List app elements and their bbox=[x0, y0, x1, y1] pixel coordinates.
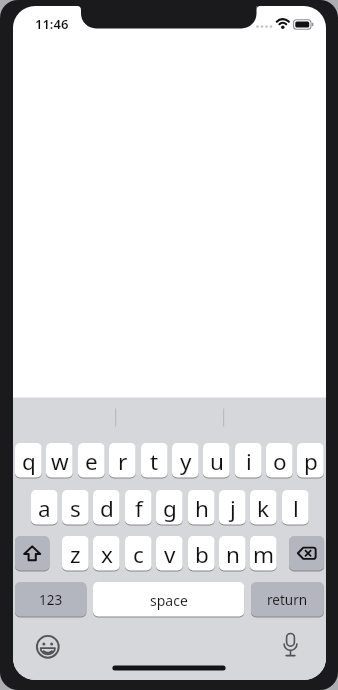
button[interactable]: space bbox=[93, 582, 244, 618]
button[interactable] bbox=[289, 536, 324, 572]
staticText: 11:46 bbox=[35, 15, 69, 32]
staticText: s bbox=[70, 493, 81, 524]
button[interactable]: m bbox=[250, 536, 277, 572]
staticText: e bbox=[85, 446, 98, 477]
button[interactable]: z bbox=[62, 536, 89, 572]
staticText: d bbox=[100, 493, 114, 524]
staticText: h bbox=[195, 493, 209, 524]
button[interactable]: g bbox=[156, 490, 183, 526]
staticText: k bbox=[257, 493, 270, 524]
staticText: w bbox=[51, 446, 69, 477]
staticText: c bbox=[133, 539, 144, 570]
button[interactable]: w bbox=[46, 443, 73, 479]
button[interactable]: 11:46 bbox=[30, 15, 74, 32]
button[interactable]: v bbox=[156, 536, 183, 572]
staticText: v bbox=[164, 539, 176, 570]
staticText: p bbox=[304, 446, 318, 477]
button[interactable]: a bbox=[31, 490, 58, 526]
staticText: f bbox=[135, 493, 143, 524]
button[interactable]: o bbox=[266, 443, 293, 479]
staticText: b bbox=[195, 539, 209, 570]
button[interactable]: l bbox=[282, 490, 309, 526]
staticText: l bbox=[293, 493, 299, 524]
staticText: t bbox=[150, 446, 159, 477]
staticText: u bbox=[210, 446, 224, 477]
staticText: q bbox=[22, 446, 36, 477]
staticText: g bbox=[163, 493, 177, 524]
staticText: a bbox=[38, 493, 51, 524]
button[interactable]: u bbox=[203, 443, 230, 479]
staticText: x bbox=[101, 539, 113, 570]
button[interactable]: c bbox=[125, 536, 152, 572]
button[interactable]: s bbox=[62, 490, 89, 526]
button[interactable]: p bbox=[297, 443, 324, 479]
staticText: m bbox=[253, 539, 275, 570]
button[interactable]: q bbox=[15, 443, 42, 479]
staticText: i bbox=[246, 446, 252, 477]
button[interactable]: 123 bbox=[15, 582, 86, 618]
staticText: return bbox=[267, 591, 308, 609]
button[interactable]: e bbox=[78, 443, 105, 479]
button[interactable]: j bbox=[219, 490, 246, 526]
staticText: space bbox=[150, 591, 188, 610]
staticText: o bbox=[273, 446, 287, 477]
button[interactable] bbox=[15, 536, 49, 572]
button[interactable]: x bbox=[93, 536, 120, 572]
button[interactable]: n bbox=[219, 536, 246, 572]
staticText: n bbox=[226, 539, 240, 570]
button[interactable]: d bbox=[93, 490, 120, 526]
button[interactable]: f bbox=[125, 490, 152, 526]
staticText: y bbox=[180, 446, 192, 477]
button[interactable]: t bbox=[141, 443, 168, 479]
button[interactable]: h bbox=[188, 490, 215, 526]
button[interactable]: i bbox=[235, 443, 262, 479]
button[interactable]: k bbox=[250, 490, 277, 526]
button[interactable]: r bbox=[109, 443, 136, 479]
staticText: j bbox=[230, 493, 236, 524]
button[interactable]: return bbox=[251, 582, 324, 618]
button[interactable]: y bbox=[172, 443, 199, 479]
staticText: r bbox=[118, 446, 128, 477]
staticText: 123 bbox=[39, 591, 63, 609]
staticText: z bbox=[70, 539, 81, 570]
button[interactable]: b bbox=[188, 536, 215, 572]
